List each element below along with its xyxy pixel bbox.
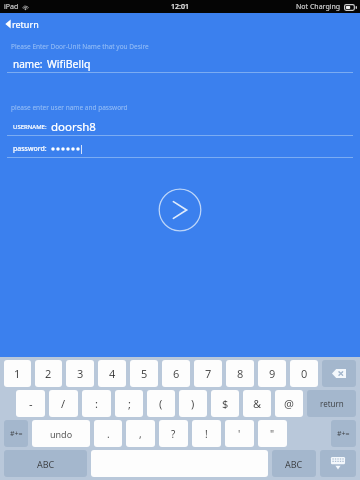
staticText: : <box>95 396 98 411</box>
button[interactable]: 4 <box>98 360 126 387</box>
staticText: WifiBellq <box>47 57 91 71</box>
staticText: 6 <box>173 366 180 381</box>
staticText: name: <box>13 57 43 71</box>
staticText: doorsh8 <box>51 119 96 135</box>
staticText: undo <box>50 428 73 440</box>
staticText: 5 <box>141 366 148 381</box>
staticText: ' <box>238 427 241 441</box>
button[interactable]: Hide keyboard <box>320 450 356 477</box>
staticText: . <box>107 427 110 441</box>
staticText: #+= <box>10 429 23 439</box>
staticText: password: <box>13 144 47 154</box>
staticText: / <box>61 396 66 411</box>
staticText: ? <box>171 427 176 441</box>
staticText: ! <box>205 427 208 441</box>
button[interactable]: - <box>16 390 45 417</box>
button[interactable]: 7 <box>194 360 222 387</box>
staticText: ) <box>191 396 195 411</box>
button[interactable]: 9 <box>258 360 286 387</box>
button[interactable]: : <box>82 390 111 417</box>
staticText: return <box>320 398 344 409</box>
button[interactable]: ? <box>159 420 188 447</box>
staticText: 0 <box>301 366 308 381</box>
button[interactable]: Continue <box>158 188 202 232</box>
button[interactable]: ! <box>192 420 221 447</box>
button[interactable]: return <box>307 390 356 417</box>
button[interactable]: / <box>49 390 78 417</box>
staticText: 1 <box>14 366 21 381</box>
button[interactable]: 6 <box>162 360 190 387</box>
button[interactable]: return <box>0 14 49 34</box>
button[interactable]: 5 <box>130 360 158 387</box>
staticText: Please Enter Door-Unit Name that you Des… <box>11 42 149 51</box>
staticText: please enter user name and password <box>11 103 128 112</box>
staticText: 4 <box>109 366 116 381</box>
staticText: ABC <box>37 458 55 470</box>
button[interactable]: ABC <box>4 450 87 477</box>
staticText: " <box>270 427 275 441</box>
button[interactable]: ; <box>115 390 143 417</box>
staticText: ( <box>159 396 163 411</box>
button[interactable]: #+= <box>331 420 356 447</box>
staticText: return <box>12 18 39 30</box>
button[interactable]: ' <box>225 420 254 447</box>
staticText: - <box>29 396 33 411</box>
button[interactable]: 0 <box>290 360 318 387</box>
button[interactable]: Backspace <box>322 360 356 387</box>
button[interactable]: ) <box>179 390 207 417</box>
staticText: $ <box>222 396 229 411</box>
button[interactable]: 3 <box>66 360 94 387</box>
staticText: @ <box>284 396 294 411</box>
staticText: USERNAME: <box>13 123 47 131</box>
button[interactable]: ( <box>147 390 175 417</box>
button[interactable]: name: <box>0 56 360 73</box>
button[interactable]: 8 <box>226 360 254 387</box>
button[interactable]: . <box>94 420 122 447</box>
staticText: 7 <box>205 366 212 381</box>
button[interactable]: #+= <box>4 420 28 447</box>
button[interactable]: , <box>126 420 155 447</box>
button[interactable]: & <box>243 390 271 417</box>
staticText: 3 <box>77 366 84 381</box>
staticText: iPad <box>4 2 19 12</box>
button[interactable]: 2 <box>35 360 62 387</box>
staticText: & <box>253 396 262 411</box>
button[interactable]: undo <box>32 420 90 447</box>
staticText: 12:01 <box>171 2 189 12</box>
button[interactable]: ABC <box>272 450 316 477</box>
button[interactable]: @ <box>275 390 303 417</box>
staticText: Not Charging <box>296 2 341 12</box>
button[interactable]: password: <box>0 141 360 158</box>
staticText: 8 <box>237 366 244 381</box>
button[interactable]: USERNAME: <box>0 119 360 136</box>
staticText: 2 <box>45 366 52 381</box>
button[interactable]: " <box>258 420 287 447</box>
staticText: ABC <box>285 458 303 470</box>
staticText: , <box>139 427 142 441</box>
staticText: ; <box>128 396 131 411</box>
button[interactable]: $ <box>211 390 239 417</box>
staticText: 9 <box>269 366 276 381</box>
staticText: #+= <box>337 429 350 439</box>
button[interactable]: 1 <box>4 360 31 387</box>
